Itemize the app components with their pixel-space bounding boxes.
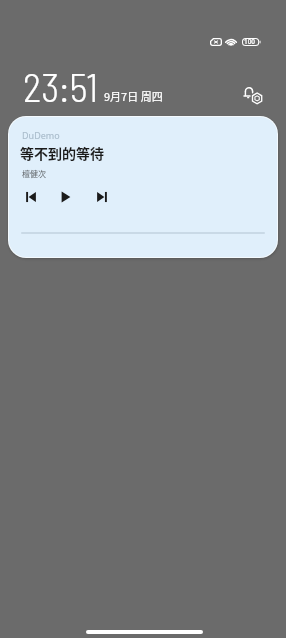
staticText: DuDemo bbox=[22, 129, 60, 141]
staticText: 檀健次 bbox=[22, 168, 46, 180]
button[interactable]: Play bbox=[56, 188, 76, 206]
button[interactable]: Previous track bbox=[21, 188, 41, 206]
button[interactable]: DuDemo bbox=[9, 117, 277, 257]
staticText: 100 bbox=[244, 37, 255, 46]
other: Battery 100 percent bbox=[242, 38, 261, 46]
staticText: 23:51 bbox=[23, 62, 99, 109]
staticText: 等不到的等待 bbox=[20, 143, 104, 163]
other: Wi-Fi bbox=[224, 38, 238, 46]
button[interactable]: Notification settings bbox=[243, 85, 264, 105]
staticText: 9月7日 周四 bbox=[104, 88, 163, 104]
button[interactable]: Next track bbox=[92, 188, 112, 206]
other: No SIM card bbox=[210, 38, 222, 46]
